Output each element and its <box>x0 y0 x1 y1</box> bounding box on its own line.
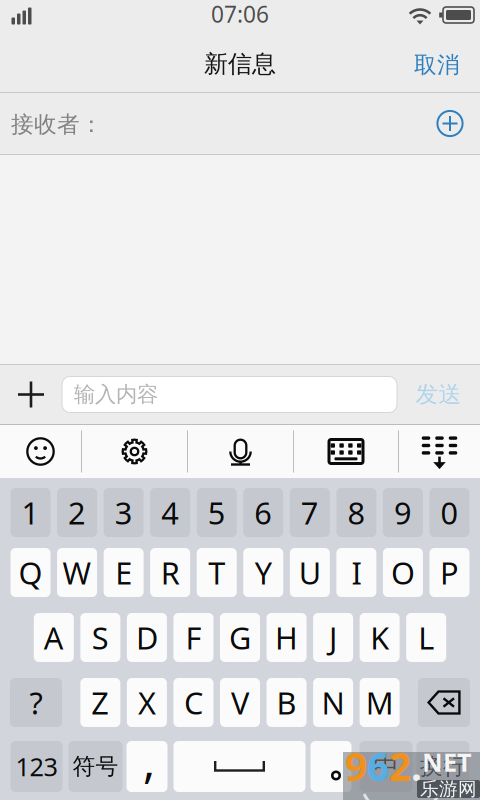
button[interactable]: K <box>360 613 400 662</box>
staticText: Y <box>255 552 272 593</box>
button[interactable]: N <box>313 678 353 727</box>
staticText: 6 <box>254 492 272 533</box>
button[interactable]: Keyboard <box>294 425 398 478</box>
staticText: C <box>184 682 203 723</box>
staticText: O <box>391 552 415 593</box>
button[interactable]: Add recipient <box>428 100 472 146</box>
button[interactable]: A <box>34 613 74 662</box>
staticText: 1 <box>21 492 39 533</box>
button[interactable]: Emoji <box>0 425 81 478</box>
staticText: 3 <box>115 492 133 533</box>
button[interactable]: L <box>406 613 446 662</box>
button[interactable]: 2 <box>57 488 97 537</box>
staticText: N <box>322 682 345 723</box>
staticText: 2 <box>68 492 86 533</box>
staticText: U <box>299 552 321 593</box>
button[interactable]: 中 <box>359 741 412 792</box>
staticText: L <box>418 617 434 658</box>
button[interactable]: Hide keyboard <box>399 425 480 478</box>
staticText: 发送 <box>415 381 461 408</box>
button[interactable]: 8 <box>336 488 376 537</box>
button[interactable]: I <box>336 548 376 597</box>
staticText: 0 <box>440 492 458 533</box>
staticText: Q <box>18 552 42 593</box>
staticText: 2 <box>389 740 411 792</box>
staticText: D <box>136 617 158 658</box>
button[interactable]: Delete <box>418 678 470 727</box>
button[interactable]: Y <box>243 548 283 597</box>
staticText: 4 <box>161 492 179 533</box>
staticText: 中 <box>373 751 398 782</box>
button[interactable]: B <box>266 678 306 727</box>
staticText: 7 <box>301 492 319 533</box>
button[interactable]: M <box>360 678 400 727</box>
staticText: Z <box>91 682 109 723</box>
staticText: R <box>161 552 180 593</box>
staticText: 取消 <box>414 51 460 79</box>
button[interactable]: C <box>173 678 213 727</box>
button[interactable]: S <box>80 613 120 662</box>
staticText: . <box>411 740 422 792</box>
button[interactable]: 1 <box>10 488 50 537</box>
staticText: 8 <box>347 492 365 533</box>
staticText: G <box>229 617 251 658</box>
button[interactable]: Settings <box>82 425 187 478</box>
button[interactable]: V <box>220 678 260 727</box>
button[interactable]: ? <box>10 678 62 727</box>
button[interactable]: P <box>429 548 469 597</box>
staticText: H <box>275 617 298 658</box>
button[interactable]: 9 <box>383 488 423 537</box>
staticText: P <box>440 552 459 593</box>
staticText: E <box>115 552 132 593</box>
button[interactable]: G <box>220 613 260 662</box>
button[interactable]: 取消 <box>412 36 480 86</box>
button[interactable]: 5 <box>197 488 237 537</box>
staticText: 123 <box>15 750 57 783</box>
button[interactable]: Space <box>173 741 305 792</box>
button[interactable]: 换行 <box>416 741 469 792</box>
staticText: F <box>185 617 201 658</box>
staticText: 9 <box>394 492 412 533</box>
button[interactable]: 输入内容 <box>62 376 397 412</box>
staticText: S <box>92 617 109 658</box>
button[interactable]: O <box>383 548 423 597</box>
button[interactable]: Q <box>10 548 50 597</box>
button[interactable]: Z <box>80 678 120 727</box>
button[interactable]: Attach <box>0 366 62 423</box>
button[interactable]: Voice input <box>188 425 293 478</box>
button[interactable]: 发送 <box>397 366 480 423</box>
staticText: 符号 <box>72 753 118 780</box>
button[interactable]: X <box>127 678 167 727</box>
button[interactable]: H <box>267 613 307 662</box>
staticText: 换行 <box>420 753 466 780</box>
button[interactable]: U <box>290 548 330 597</box>
button[interactable]: Comma <box>126 741 167 792</box>
staticText: A <box>44 617 64 658</box>
staticText: T <box>208 552 225 593</box>
staticText: M <box>366 682 394 723</box>
button[interactable]: 3 <box>104 488 144 537</box>
button[interactable]: 6 <box>243 488 283 537</box>
button[interactable]: 符号 <box>68 741 122 792</box>
staticText: W <box>63 552 92 593</box>
button[interactable]: Period <box>310 741 351 792</box>
button[interactable]: J <box>313 613 353 662</box>
staticText: 07:06 <box>211 0 269 29</box>
button[interactable]: W <box>57 548 97 597</box>
button[interactable]: D <box>127 613 167 662</box>
button[interactable]: 7 <box>290 488 330 537</box>
staticText: K <box>370 617 389 658</box>
button[interactable]: T <box>197 548 237 597</box>
staticText: , <box>143 730 155 791</box>
button[interactable]: E <box>104 548 144 597</box>
staticText: 5 <box>208 492 226 533</box>
staticText: 接收者： <box>11 111 103 138</box>
staticText: V <box>231 682 249 723</box>
button[interactable]: 123 <box>10 741 62 792</box>
button[interactable]: 4 <box>150 488 190 537</box>
button[interactable]: F <box>173 613 213 662</box>
staticText: I <box>351 552 361 593</box>
staticText: 新信息 <box>204 49 276 79</box>
button[interactable]: 0 <box>429 488 469 537</box>
button[interactable]: R <box>150 548 190 597</box>
